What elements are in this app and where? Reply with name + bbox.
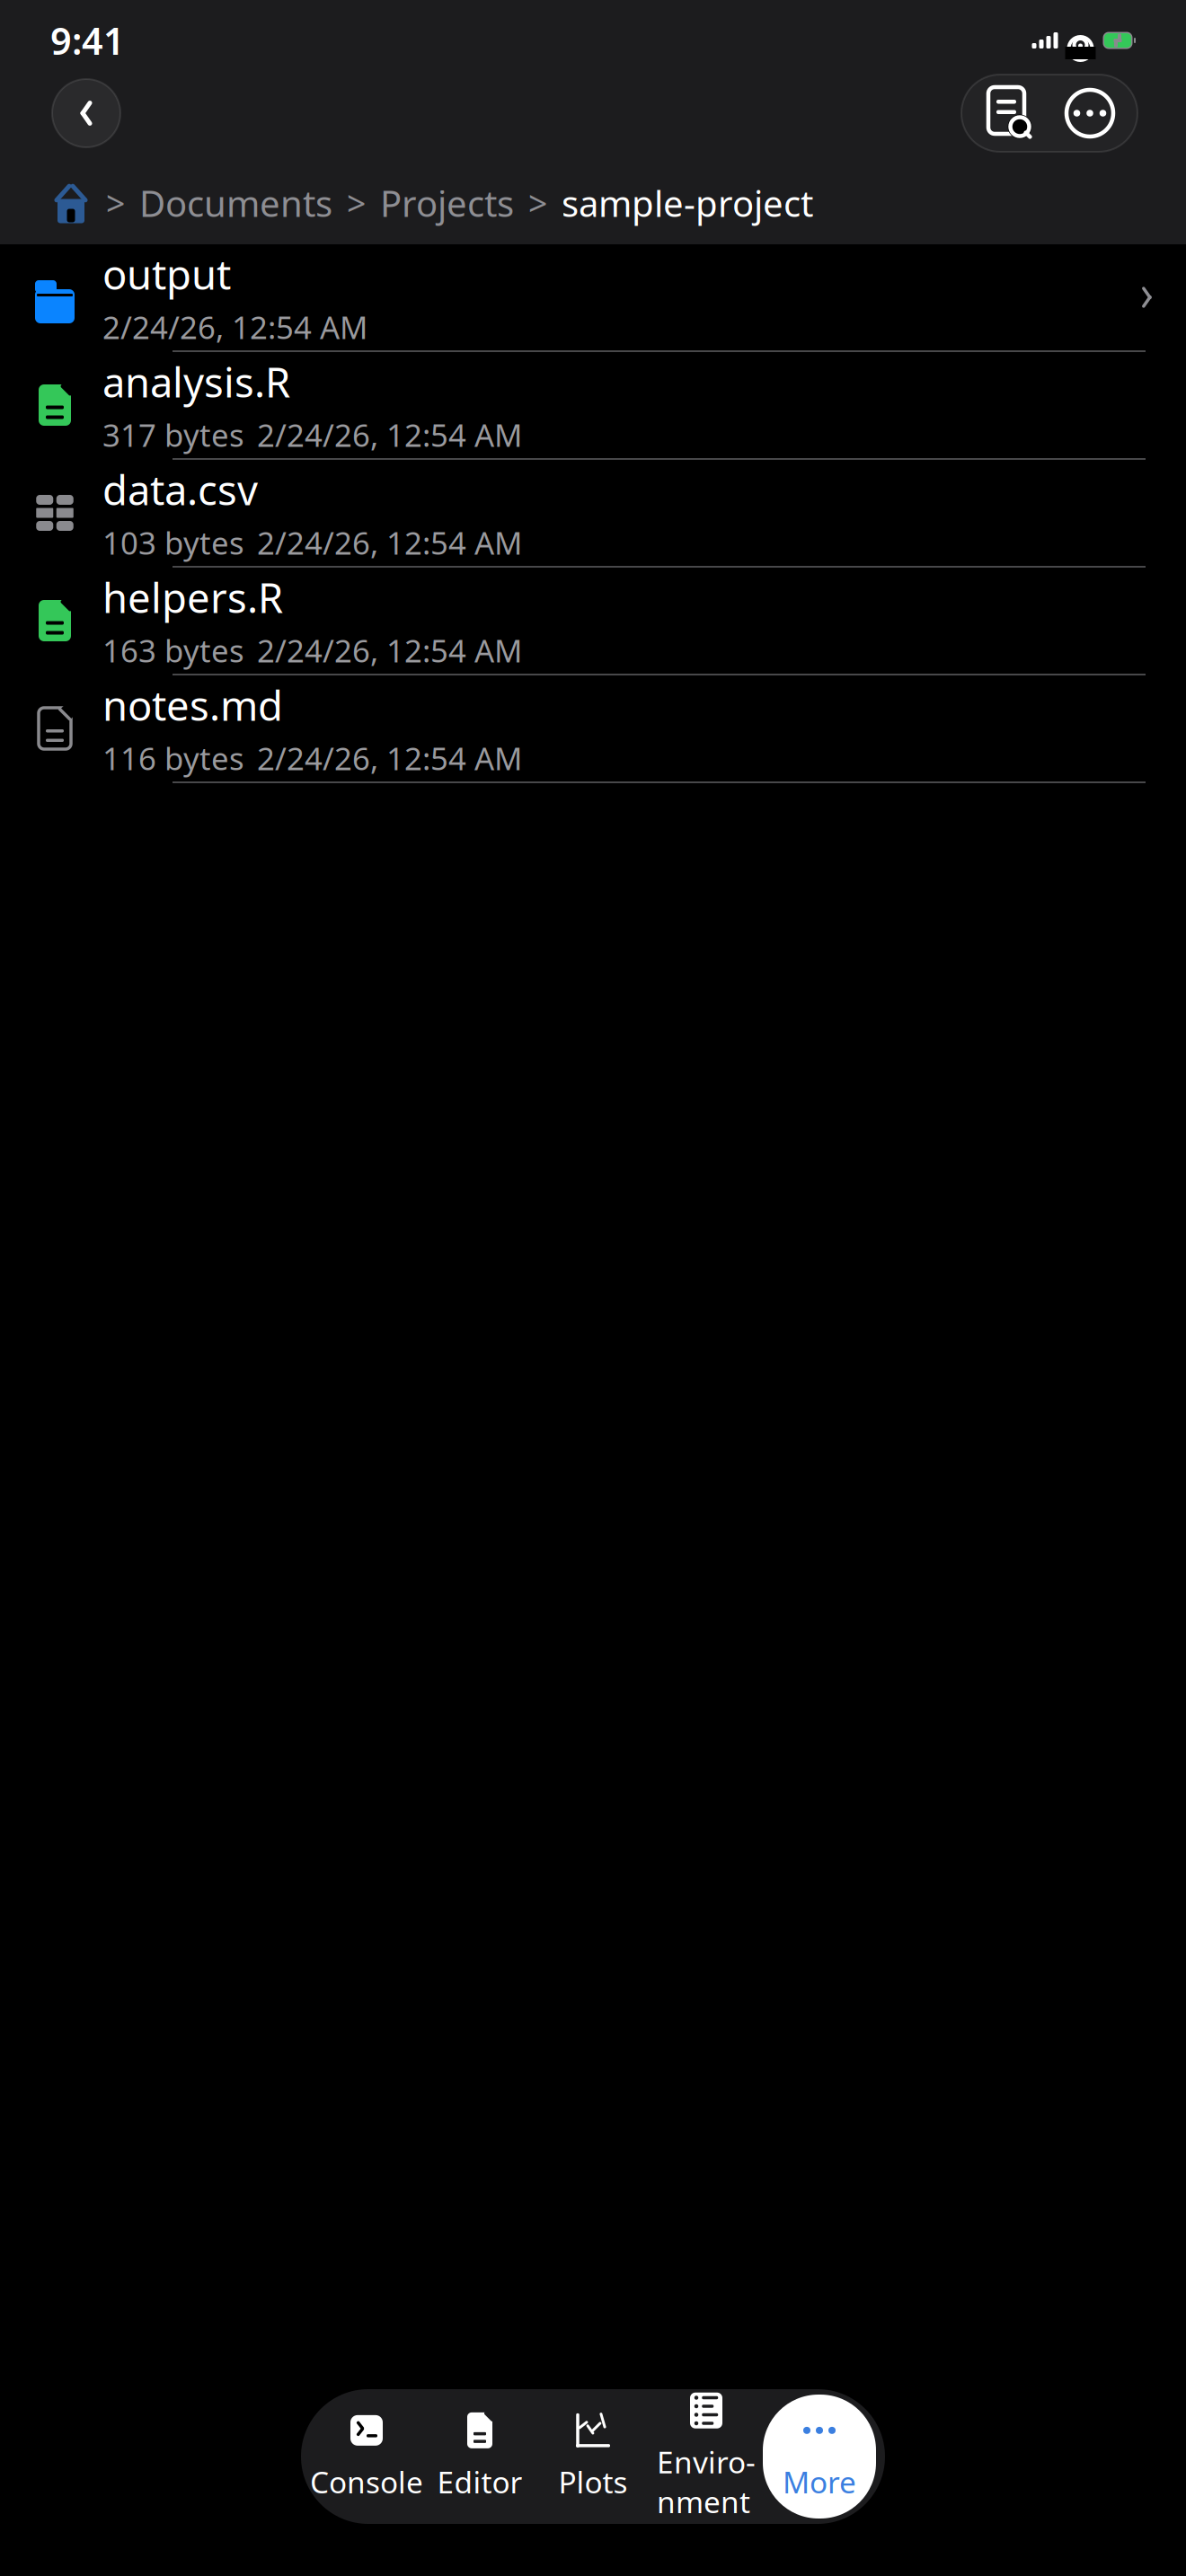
staticText: Editor bbox=[437, 2462, 522, 2502]
staticText: Plots bbox=[558, 2462, 628, 2502]
button[interactable]: data.csv bbox=[0, 460, 1186, 568]
staticText: 163 bytes bbox=[102, 630, 244, 671]
button[interactable]: Editor bbox=[423, 2395, 536, 2519]
staticText: 116 bytes bbox=[102, 738, 244, 779]
button[interactable]: Projects bbox=[380, 179, 514, 227]
staticText: > bbox=[528, 181, 547, 225]
button[interactable]: output bbox=[0, 244, 1186, 352]
staticText: > bbox=[106, 181, 125, 225]
staticText: analysis.R bbox=[102, 355, 290, 409]
staticText: Environment bbox=[657, 2442, 756, 2521]
button[interactable]: More options bbox=[1058, 82, 1121, 145]
button[interactable]: Home bbox=[50, 182, 92, 224]
staticText: helpers.R bbox=[102, 570, 283, 624]
staticText: data.csv bbox=[102, 462, 258, 517]
button[interactable]: Console bbox=[310, 2395, 423, 2519]
button[interactable]: Find in files bbox=[978, 82, 1040, 145]
button[interactable]: analysis.R bbox=[0, 352, 1186, 460]
button[interactable]: Plots bbox=[536, 2395, 650, 2519]
staticText: 2/24/26, 12:54 AM bbox=[257, 738, 522, 779]
staticText: 2/24/26, 12:54 AM bbox=[257, 522, 522, 563]
button[interactable]: More bbox=[763, 2395, 876, 2519]
staticText: Projects bbox=[380, 179, 514, 227]
staticText: 2/24/26, 12:54 AM bbox=[102, 306, 367, 348]
staticText: 2/24/26, 12:54 AM bbox=[257, 630, 522, 671]
staticText: Documents bbox=[139, 179, 332, 227]
button[interactable]: helpers.R bbox=[0, 568, 1186, 675]
staticText: > bbox=[347, 181, 366, 225]
staticText: 103 bytes bbox=[102, 522, 244, 563]
button[interactable]: notes.md bbox=[0, 675, 1186, 783]
staticText: notes.md bbox=[102, 678, 283, 732]
button[interactable]: Documents bbox=[139, 179, 332, 227]
button[interactable]: Environment bbox=[650, 2395, 763, 2519]
staticText: More bbox=[783, 2462, 856, 2502]
staticText: 2/24/26, 12:54 AM bbox=[257, 414, 522, 455]
staticText: 317 bytes bbox=[102, 414, 244, 455]
staticText: 9:41 bbox=[50, 16, 125, 65]
staticText: sample-project bbox=[562, 179, 813, 227]
button[interactable]: Back bbox=[49, 75, 124, 151]
staticText: output bbox=[102, 247, 231, 301]
staticText: Console bbox=[310, 2462, 423, 2502]
